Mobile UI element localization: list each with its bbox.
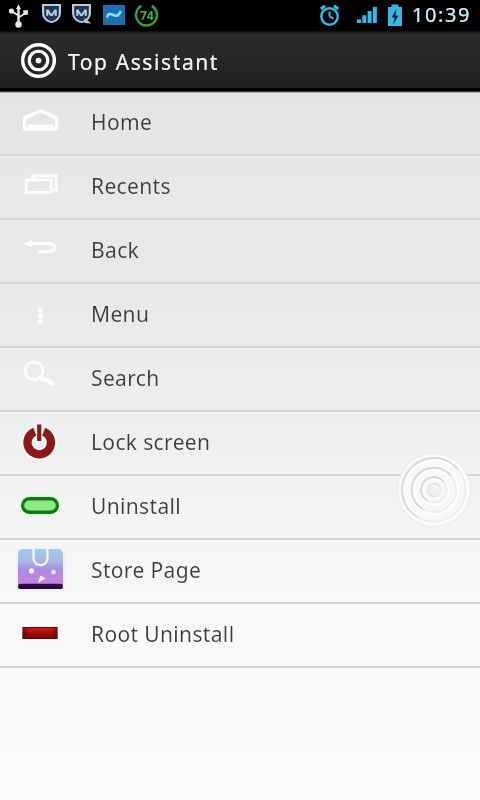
staticText: Search [91,364,160,393]
staticText: Top Assistant [68,48,220,77]
button[interactable]: Search [0,349,480,410]
button[interactable]: Store Page [0,541,480,602]
staticText: Root Uninstall [91,620,235,649]
staticText: Home [91,108,153,137]
button[interactable]: Recents [0,157,480,218]
staticText: Recents [91,172,171,201]
button[interactable]: Back [0,221,480,282]
button[interactable]: Home [0,93,480,154]
staticText: Uninstall [91,492,182,521]
button[interactable]: Uninstall [0,477,480,538]
staticText: 10:39 [412,1,472,28]
button[interactable]: Menu [0,285,480,346]
staticText: Menu [91,300,150,329]
staticText: 74 [140,7,154,23]
staticText: Store Page [91,556,202,585]
button[interactable]: Root Uninstall [0,605,480,666]
button[interactable]: Lock screen [0,413,480,474]
staticText: Back [91,236,140,265]
staticText: Lock screen [91,428,211,457]
button[interactable]: Top Assistant [0,30,480,88]
button[interactable]: Assistant overlay button [397,453,471,527]
